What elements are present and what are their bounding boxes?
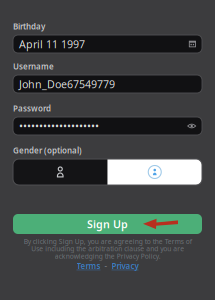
button[interactable]: Privacy <box>111 261 138 271</box>
staticText: Privacy <box>111 261 138 271</box>
staticText: John_Doe67549779 <box>19 77 115 91</box>
button[interactable]: Sign Up <box>13 214 202 234</box>
staticText: Terms <box>76 261 100 271</box>
staticText: - <box>104 261 107 271</box>
button[interactable]: Terms <box>76 261 100 271</box>
staticText: April 11 1997 <box>19 37 85 51</box>
button[interactable]: •••••••••••••••••••• <box>13 117 202 135</box>
staticText: By clicking Sign Up, you are agreeing to… <box>23 237 191 261</box>
staticText: Username <box>13 61 54 72</box>
button[interactable]: April 11 1997 <box>13 35 202 53</box>
button[interactable]: Male <box>107 159 202 185</box>
staticText: Birthday <box>13 21 45 32</box>
staticText: Password <box>13 103 51 114</box>
staticText: Gender (optional) <box>13 145 82 156</box>
staticText: Sign Up <box>87 217 128 231</box>
button[interactable]: Female <box>13 159 107 185</box>
button[interactable]: John_Doe67549779 <box>13 75 202 93</box>
staticText: •••••••••••••••••••• <box>19 119 99 133</box>
